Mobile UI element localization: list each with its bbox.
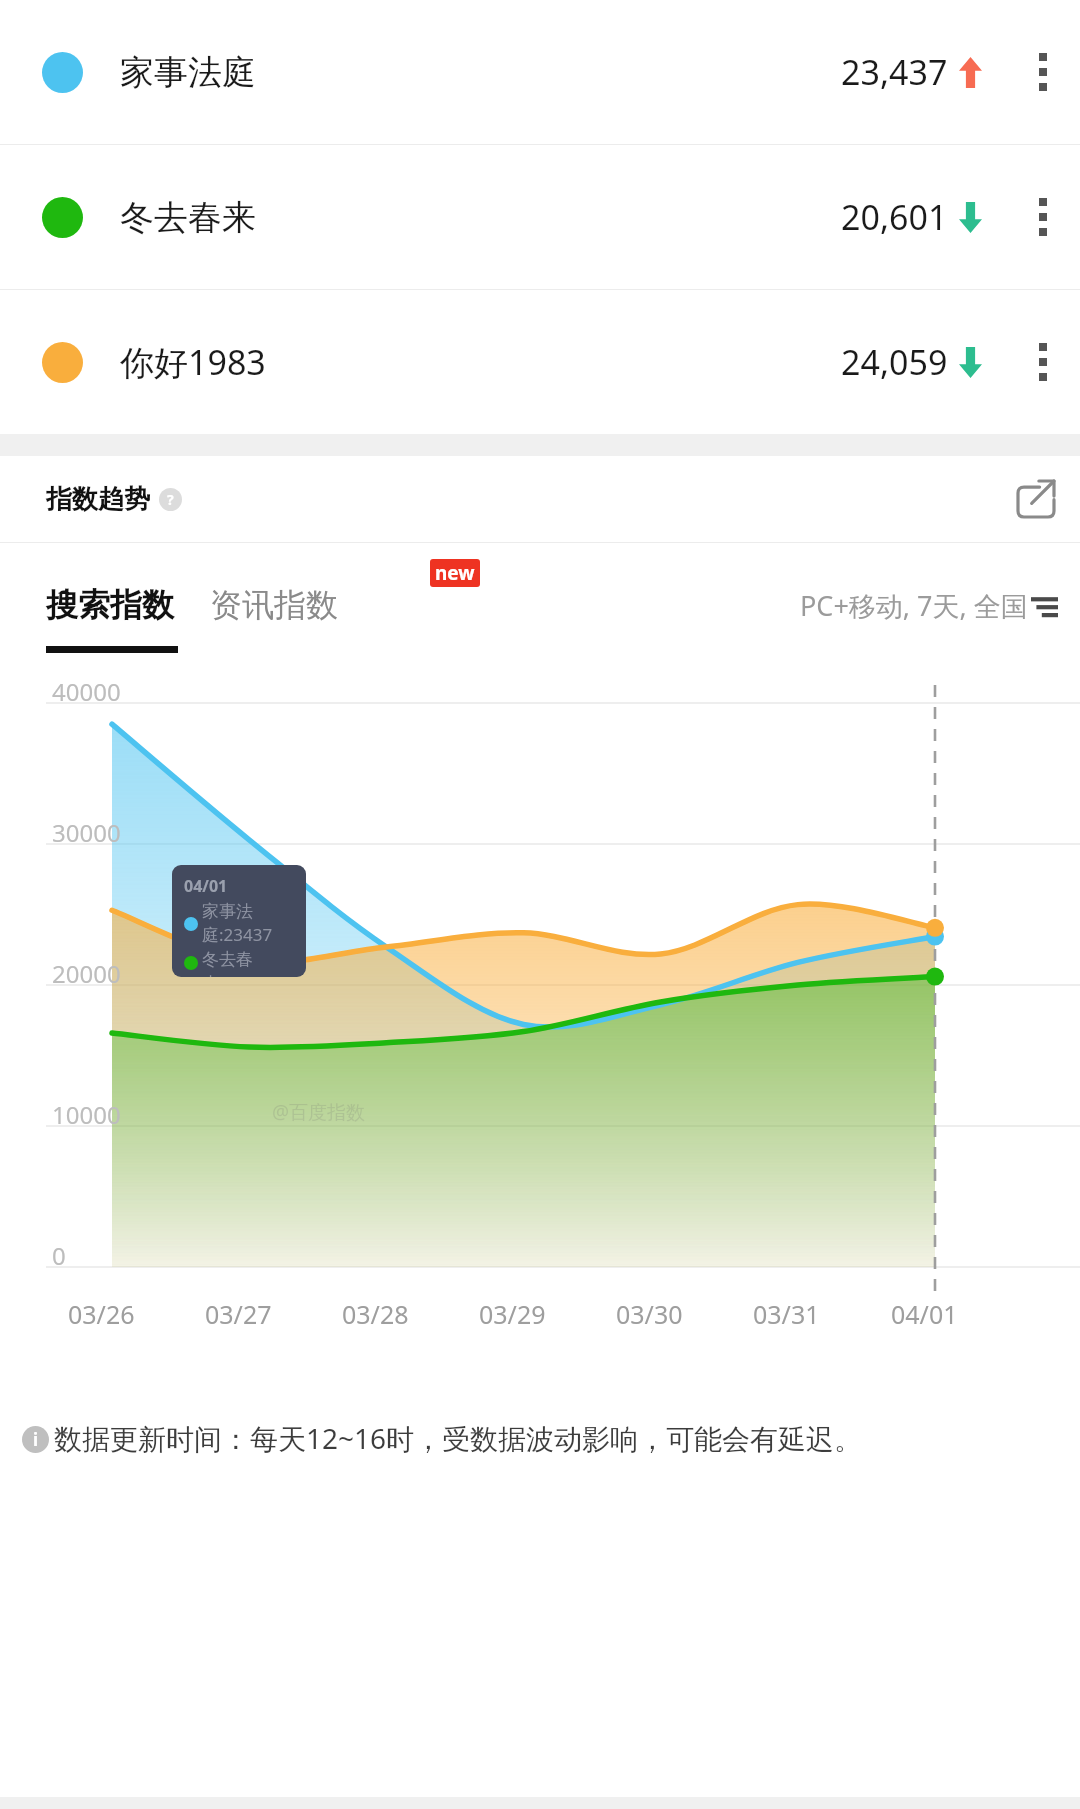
staticText: 40000 bbox=[52, 675, 121, 708]
staticText: 03/31 bbox=[753, 1297, 820, 1331]
staticText: 你好1983 bbox=[120, 339, 266, 385]
staticText: 03/28 bbox=[342, 1297, 409, 1331]
button[interactable]: 更多操作 bbox=[1012, 331, 1074, 393]
staticText: 30000 bbox=[52, 816, 121, 849]
staticText: 0 bbox=[52, 1239, 66, 1272]
staticText: 04/01 bbox=[184, 875, 228, 897]
staticText: 10000 bbox=[52, 1098, 121, 1131]
staticText: 23,437 bbox=[841, 49, 948, 95]
button[interactable]: 冬去春来 bbox=[0, 145, 1080, 289]
staticText: i bbox=[33, 1428, 39, 1451]
staticText: 03/29 bbox=[479, 1297, 546, 1331]
button[interactable]: 04/01 bbox=[172, 865, 306, 977]
staticText: ? bbox=[167, 490, 174, 509]
staticText: 03/27 bbox=[205, 1297, 272, 1331]
staticText: 24,059 bbox=[841, 339, 948, 385]
staticText: 03/30 bbox=[616, 1297, 683, 1331]
button[interactable]: 更多操作 bbox=[1012, 186, 1074, 248]
staticText: 资讯指数 bbox=[210, 585, 338, 625]
staticText: PC+移动, 7天, 全国 bbox=[800, 587, 1028, 624]
button[interactable]: 你好1983 bbox=[0, 290, 1080, 434]
staticText: 家事法庭:23437 bbox=[202, 901, 306, 946]
staticText: 04/01 bbox=[891, 1297, 958, 1331]
staticText: 20000 bbox=[52, 957, 121, 990]
staticText: 03/26 bbox=[68, 1297, 135, 1331]
staticText: 冬去春来:20601 bbox=[202, 949, 306, 977]
button[interactable]: 更多操作 bbox=[1012, 41, 1074, 103]
staticText: new bbox=[435, 560, 475, 586]
staticText: 搜索指数 bbox=[46, 585, 174, 625]
staticText: 指数趋势 bbox=[46, 483, 150, 516]
button[interactable]: 搜索指数 bbox=[46, 577, 174, 633]
staticText: 20,601 bbox=[841, 194, 948, 240]
staticText: 家事法庭 bbox=[120, 51, 256, 94]
button[interactable]: 资讯指数 bbox=[210, 577, 338, 633]
staticText: @百度指数 bbox=[272, 1099, 366, 1125]
button[interactable]: 在浏览器中打开 bbox=[1010, 473, 1062, 525]
staticText: 冬去春来 bbox=[120, 196, 256, 239]
button[interactable]: PC+移动, 7天, 全国 bbox=[800, 579, 1058, 632]
button[interactable]: 家事法庭 bbox=[0, 0, 1080, 144]
staticText: 数据更新时间：每天12~16时，受数据波动影响，可能会有延迟。 bbox=[54, 1419, 1060, 1457]
button[interactable]: 说明 bbox=[159, 488, 182, 511]
